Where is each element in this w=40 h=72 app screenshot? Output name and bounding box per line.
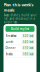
- staticText: Breakfast: [5, 34, 16, 38]
- button[interactable]: Build my list: [5, 26, 34, 32]
- staticText: Lunch: [5, 40, 13, 44]
- staticText: 610 kcal: [23, 46, 34, 50]
- staticText: Build my list: [11, 27, 29, 31]
- staticText: Plan this week's meals: [3, 2, 33, 13]
- staticText: 180 kcal: [23, 52, 34, 56]
- button[interactable]: Breakfast: [3, 33, 36, 39]
- button[interactable]: Lunch: [3, 39, 36, 45]
- staticText: Snacks: [5, 52, 12, 56]
- staticText: Swap dishes, build your list, and check …: [3, 13, 36, 24]
- staticText: Dinner: [5, 46, 15, 50]
- staticText: 320 kcal: [23, 34, 34, 38]
- staticText: 540 kcal: [23, 40, 34, 44]
- button[interactable]: Dinner: [3, 45, 36, 51]
- button[interactable]: Snacks: [3, 51, 36, 57]
